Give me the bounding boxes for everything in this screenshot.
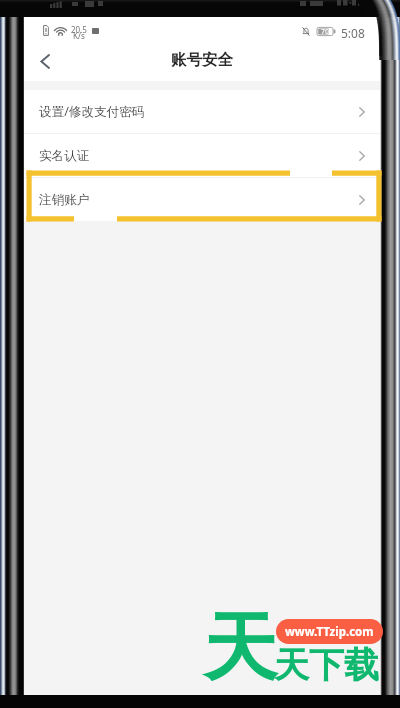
- staticText: 账号安全: [171, 50, 233, 70]
- staticText: 天: [203, 602, 277, 695]
- staticText: www.TTzip.com: [285, 624, 374, 640]
- staticText: 实名认证: [39, 148, 90, 164]
- staticText: K/s: [73, 30, 85, 41]
- staticText: 设置/修改支付密码: [39, 103, 145, 120]
- button[interactable]: 实名认证: [24, 134, 380, 177]
- button[interactable]: 注销账户: [24, 178, 380, 221]
- staticText: 20.5: [71, 24, 87, 35]
- staticText: 5:08: [341, 25, 365, 41]
- staticText: 70: [321, 27, 330, 36]
- staticText: 天下载: [274, 643, 379, 687]
- staticText: 注销账户: [39, 192, 90, 208]
- button[interactable]: Back: [30, 46, 60, 76]
- button[interactable]: 设置/修改支付密码: [24, 90, 380, 133]
